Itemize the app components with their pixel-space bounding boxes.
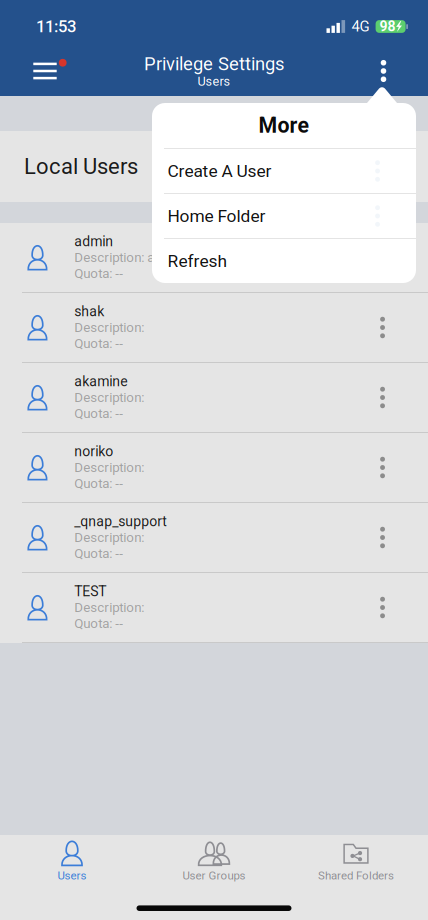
staticText: Quota: --	[74, 616, 123, 631]
staticText: More	[258, 113, 309, 138]
staticText: Home Folder	[167, 206, 265, 226]
staticText: Refresh	[167, 251, 227, 271]
staticText: Quota: --	[74, 546, 123, 561]
staticText: akamine	[74, 373, 127, 390]
staticText: _qnap_support	[74, 513, 167, 530]
staticText: Create A User	[167, 161, 271, 181]
staticText: Description: a	[74, 250, 154, 265]
button[interactable]: Menu	[23, 49, 67, 93]
staticText: admin	[74, 233, 113, 250]
staticText: Users	[57, 869, 86, 882]
staticText: User Groups	[182, 869, 245, 882]
staticText: Shared Folders	[318, 869, 394, 882]
staticText: Users	[197, 74, 230, 89]
button[interactable]: User Groups	[143, 836, 285, 886]
staticText: Local Users	[24, 154, 138, 179]
button[interactable]: shak	[0, 293, 428, 363]
button[interactable]: TEST	[0, 573, 428, 643]
staticText: 11:53	[36, 17, 76, 36]
staticText: 98	[380, 18, 396, 35]
staticText: Quota: --	[74, 266, 123, 281]
button[interactable]: akamine	[0, 363, 428, 433]
button[interactable]: _qnap_support	[0, 503, 428, 573]
staticText: Quota: --	[74, 336, 123, 351]
staticText: Description:	[74, 600, 147, 615]
button[interactable]: noriko	[0, 433, 428, 503]
staticText: 4G	[352, 18, 370, 35]
staticText: Description:	[74, 460, 147, 475]
staticText: Description:	[74, 530, 147, 545]
staticText: noriko	[74, 443, 113, 460]
button[interactable]: More options	[361, 49, 405, 93]
button[interactable]: Shared Folders	[285, 836, 427, 886]
button[interactable]: Users	[1, 836, 143, 886]
staticText: Description:	[74, 320, 147, 335]
staticText: Quota: --	[74, 406, 123, 421]
staticText: TEST	[74, 583, 106, 600]
button[interactable]: admin	[0, 223, 428, 293]
staticText: shak	[74, 303, 104, 320]
staticText: Description:	[74, 390, 147, 405]
button[interactable]: Refresh	[152, 238, 416, 283]
staticText: Privilege Settings	[144, 53, 284, 75]
button[interactable]: Home Folder	[152, 193, 416, 238]
button[interactable]: Create A User	[152, 148, 416, 193]
staticText: Quota: --	[74, 476, 123, 491]
